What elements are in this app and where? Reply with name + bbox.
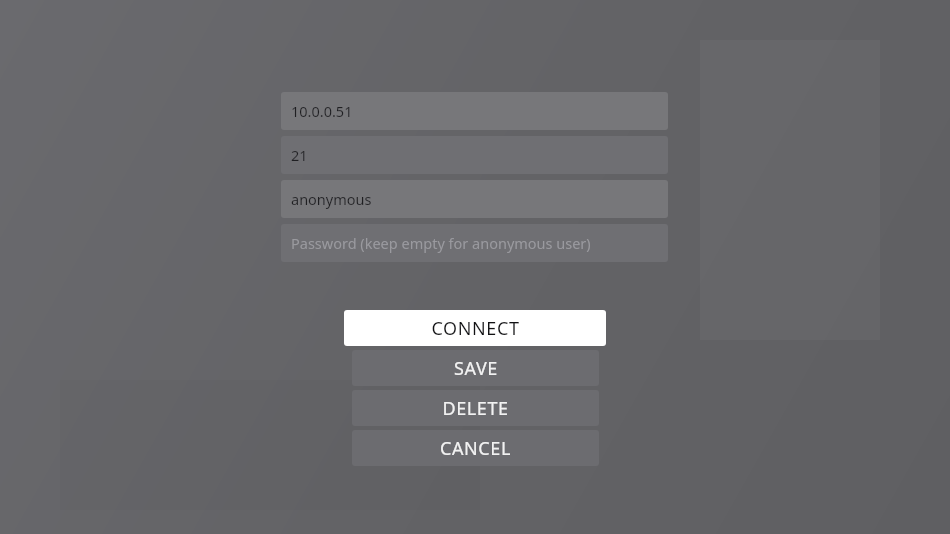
staticText: Password (keep empty for anonymous user) xyxy=(291,233,591,253)
button[interactable]: Password (keep empty for anonymous user) xyxy=(281,224,668,262)
staticText: anonymous xyxy=(291,189,372,209)
button[interactable]: anonymous xyxy=(281,180,668,218)
staticText: CONNECT xyxy=(431,316,520,341)
button[interactable]: CANCEL xyxy=(352,430,599,466)
button[interactable]: CONNECT xyxy=(344,310,606,346)
button[interactable]: 10.0.0.51 xyxy=(281,92,668,130)
button[interactable]: 21 xyxy=(281,136,668,174)
staticText: SAVE xyxy=(454,356,498,381)
staticText: 10.0.0.51 xyxy=(291,101,353,121)
button[interactable]: DELETE xyxy=(352,390,599,426)
staticText: DELETE xyxy=(442,396,509,421)
staticText: CANCEL xyxy=(440,436,511,461)
button[interactable]: SAVE xyxy=(352,350,599,386)
staticText: 21 xyxy=(291,145,308,165)
